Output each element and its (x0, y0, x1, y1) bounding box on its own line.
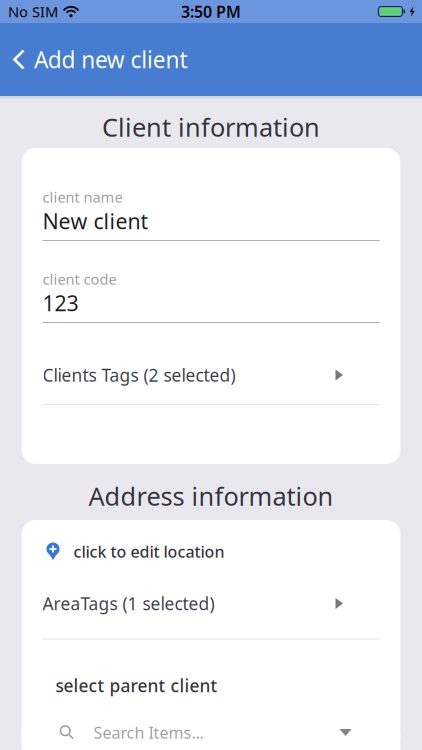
button[interactable]: Clients Tags (2 selected) (42, 365, 379, 385)
button[interactable]: client code (42, 271, 379, 323)
staticText: Client information (102, 110, 320, 144)
button[interactable]: AreaTags (1 selected) (42, 593, 379, 613)
button[interactable]: client name (42, 189, 379, 241)
button[interactable]: Back (0, 44, 187, 74)
staticText: select parent client (55, 674, 217, 697)
staticText: client code (42, 269, 116, 289)
staticText: 3:50 PM (181, 1, 241, 22)
staticText: New client (42, 207, 148, 235)
button[interactable]: Edit location (42, 519, 224, 561)
staticText: AreaTags (1 selected) (42, 592, 214, 615)
button[interactable]: Search Items (42, 695, 379, 742)
staticText: Clients Tags (2 selected) (42, 363, 235, 386)
staticText: Address information (88, 479, 333, 513)
staticText: client name (42, 187, 122, 207)
staticText: Add new client (34, 44, 187, 74)
staticText: click to edit location (73, 541, 224, 562)
staticText: Search Items... (93, 722, 203, 743)
staticText: No SIM (8, 2, 58, 21)
staticText: 123 (42, 289, 78, 317)
